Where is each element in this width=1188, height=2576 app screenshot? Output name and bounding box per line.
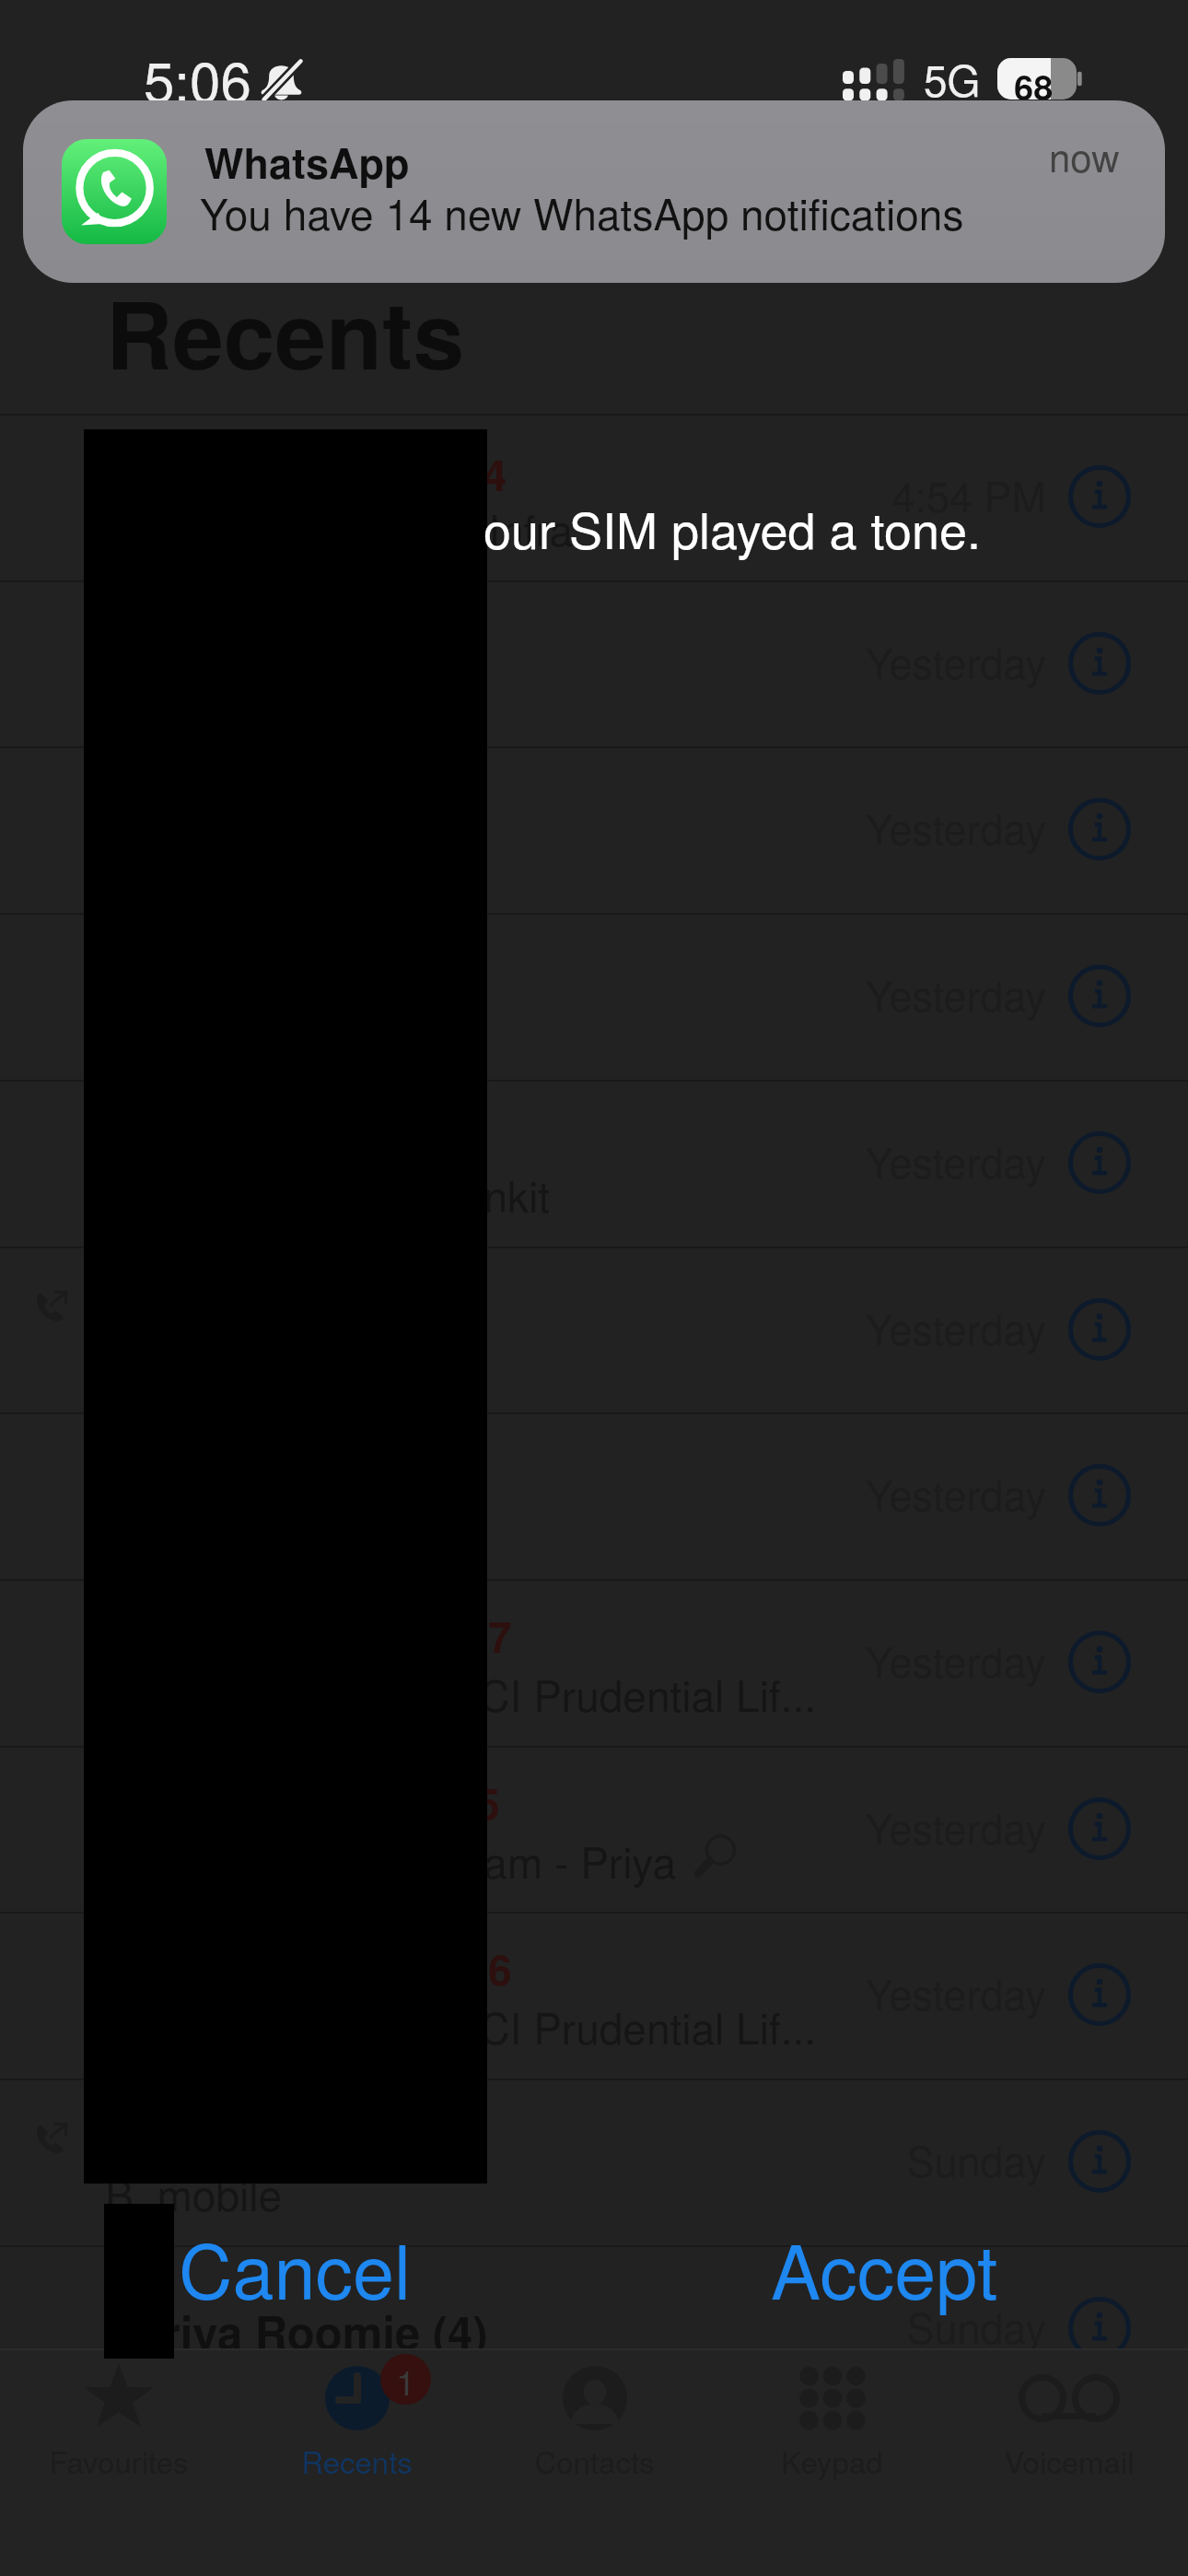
staticText: now xyxy=(1049,128,1120,183)
button[interactable]: Airtel xyxy=(0,414,1188,580)
staticText: Abhishek Ankit xyxy=(0,1164,550,1224)
staticText: 5 xyxy=(476,1772,500,1832)
button[interactable]: B mobile xyxy=(0,2078,1188,2245)
button[interactable]: Call details xyxy=(1067,964,1132,1028)
button[interactable]: Call details xyxy=(1067,1463,1132,1528)
staticText: 1 xyxy=(396,2355,416,2405)
staticText: Cancel xyxy=(179,2214,412,2315)
staticText: Team - Priya xyxy=(0,1830,676,1891)
button[interactable]: Cancel xyxy=(179,2214,418,2315)
button[interactable]: Favourites xyxy=(0,2348,238,2514)
button[interactable]: WhatsApp xyxy=(23,100,1165,283)
staticText: WhatsApp xyxy=(204,132,410,191)
staticText: You have 14 new WhatsApp notifications xyxy=(200,181,964,242)
staticText: Priya Roomie (4) xyxy=(133,2299,488,2363)
button[interactable]: Recents xyxy=(238,2348,475,2514)
staticText: Recents xyxy=(301,2439,413,2482)
button[interactable]: 6 xyxy=(0,1912,1188,2078)
button[interactable]: Yesterday xyxy=(0,1247,1188,1413)
button[interactable]: Yesterday xyxy=(0,913,1188,1080)
staticText: 5:06 xyxy=(144,39,251,118)
button[interactable]: Call details xyxy=(1067,464,1132,529)
staticText: 4:54 PM xyxy=(645,464,1046,523)
button[interactable]: 7 xyxy=(0,1579,1188,1746)
button[interactable]: 5 xyxy=(0,1746,1188,1913)
button[interactable]: Abhishek Ankit xyxy=(0,1080,1188,1247)
staticText: 6 xyxy=(488,1938,512,1998)
button[interactable]: Call details xyxy=(1067,2129,1132,2194)
staticText: 68 xyxy=(1014,61,1054,100)
button[interactable]: Priya Roomie (4) xyxy=(0,2245,1188,2412)
button[interactable]: Call details xyxy=(1067,631,1132,696)
button[interactable]: Yesterday xyxy=(0,1412,1188,1579)
button[interactable]: Call details xyxy=(1067,1630,1132,1694)
staticText: 5G xyxy=(924,48,981,109)
staticText: B mobile xyxy=(0,2162,282,2223)
staticText: Airtel Infra xyxy=(0,498,573,558)
button[interactable]: Call details xyxy=(1067,797,1132,861)
button[interactable]: Yesterday xyxy=(0,580,1188,747)
button[interactable]: Call details xyxy=(1067,2296,1132,2360)
staticText: 4 xyxy=(472,443,507,504)
staticText: ICICI Prudential Lif... xyxy=(0,1663,816,1724)
staticText: 7 xyxy=(488,1605,512,1666)
button[interactable]: Accept xyxy=(771,2214,1010,2315)
staticText: Accept xyxy=(771,2214,998,2315)
staticText: ICICI Prudential Lif... xyxy=(0,1996,816,2056)
button[interactable]: Call details xyxy=(1067,1962,1132,2027)
button[interactable]: Call details xyxy=(1067,1130,1132,1195)
staticText: Recents xyxy=(106,265,464,397)
staticText: Sunday xyxy=(645,2296,1046,2355)
button[interactable]: Call details xyxy=(1067,1797,1132,1861)
staticText: our SIM played a tone. xyxy=(483,492,982,563)
button[interactable]: Yesterday xyxy=(0,746,1188,913)
button[interactable]: Call details xyxy=(1067,1297,1132,1362)
